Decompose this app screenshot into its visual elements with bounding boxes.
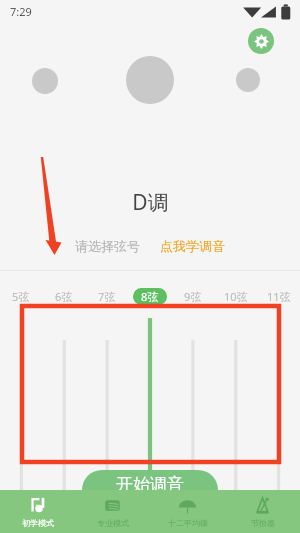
button[interactable]: 请选择弦号 — [73, 238, 142, 254]
staticText: 初学模式 — [22, 518, 54, 528]
staticText: 10弦 — [224, 289, 248, 304]
staticText: 5弦 — [12, 289, 30, 304]
staticText: 十二平均律 — [168, 518, 208, 528]
staticText: 7弦 — [98, 289, 116, 304]
button[interactable]: 6弦 — [42, 286, 85, 306]
button[interactable] — [236, 68, 260, 92]
button[interactable]: 十二平均律 — [150, 490, 225, 533]
button[interactable]: 5弦 — [0, 286, 42, 306]
button[interactable]: Settings — [248, 28, 274, 54]
button[interactable]: 8弦 — [128, 286, 171, 306]
staticText: 11弦 — [267, 289, 291, 304]
staticText: D调 — [132, 188, 169, 217]
staticText: 6弦 — [55, 289, 73, 304]
button[interactable]: 10弦 — [214, 286, 257, 306]
button[interactable]: 节拍器 — [225, 490, 300, 533]
staticText: 点我学调音 — [160, 238, 225, 254]
staticText: 8弦 — [141, 289, 159, 304]
staticText: 节拍器 — [251, 518, 275, 528]
staticText: 专业模式 — [97, 518, 129, 528]
button[interactable]: 9弦 — [171, 286, 214, 306]
staticText: 请选择弦号 — [75, 238, 140, 254]
staticText: 开始调音 — [116, 474, 184, 495]
button[interactable]: 点我学调音 — [158, 238, 227, 254]
button[interactable]: 开始调音 — [82, 470, 218, 510]
button[interactable] — [126, 56, 174, 104]
button[interactable]: 专业模式 — [75, 490, 150, 533]
staticText: 9弦 — [184, 289, 202, 304]
staticText: 7:29 — [10, 4, 32, 19]
button[interactable] — [32, 68, 58, 94]
button[interactable]: 11弦 — [257, 286, 300, 306]
button[interactable]: 初学模式 — [0, 490, 75, 533]
button[interactable]: 7弦 — [85, 286, 128, 306]
